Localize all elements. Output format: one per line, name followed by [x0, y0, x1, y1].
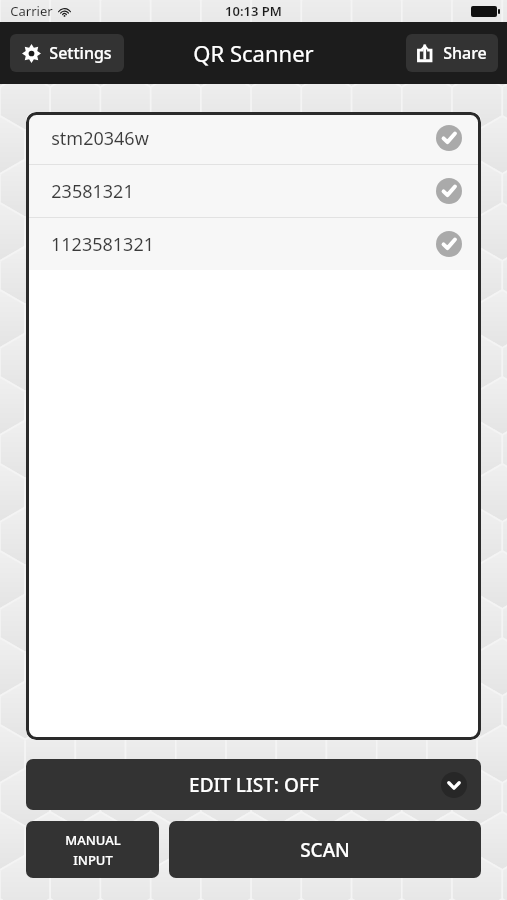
button[interactable]: 23581321	[26, 165, 481, 217]
staticText: QR Scanner	[193, 38, 314, 68]
button[interactable]: MANUAL	[26, 821, 159, 878]
staticText: 23581321	[51, 179, 134, 204]
staticText: Carrier	[10, 2, 53, 20]
staticText: SCAN	[300, 837, 350, 863]
staticText: EDIT LIST: OFF	[189, 772, 319, 798]
staticText: stm20346w	[51, 126, 149, 151]
other: Selected	[436, 125, 462, 151]
other: Selected	[436, 178, 462, 204]
staticText: Settings	[49, 42, 112, 64]
staticText: Share	[443, 42, 487, 64]
button[interactable]: SCAN	[169, 821, 481, 878]
staticText: 1123581321	[51, 232, 154, 257]
staticText: INPUT	[73, 851, 113, 869]
button[interactable]: Settings	[10, 34, 124, 72]
staticText: 10:13 PM	[225, 2, 282, 20]
staticText: MANUAL	[65, 831, 121, 849]
button[interactable]: stm20346w	[26, 112, 481, 164]
other: Selected	[436, 231, 462, 257]
button[interactable]: EDIT LIST: OFF	[26, 759, 481, 810]
button[interactable]: 1123581321	[26, 218, 481, 270]
other: Expand edit list	[441, 772, 467, 798]
button[interactable]: Share	[406, 34, 498, 72]
